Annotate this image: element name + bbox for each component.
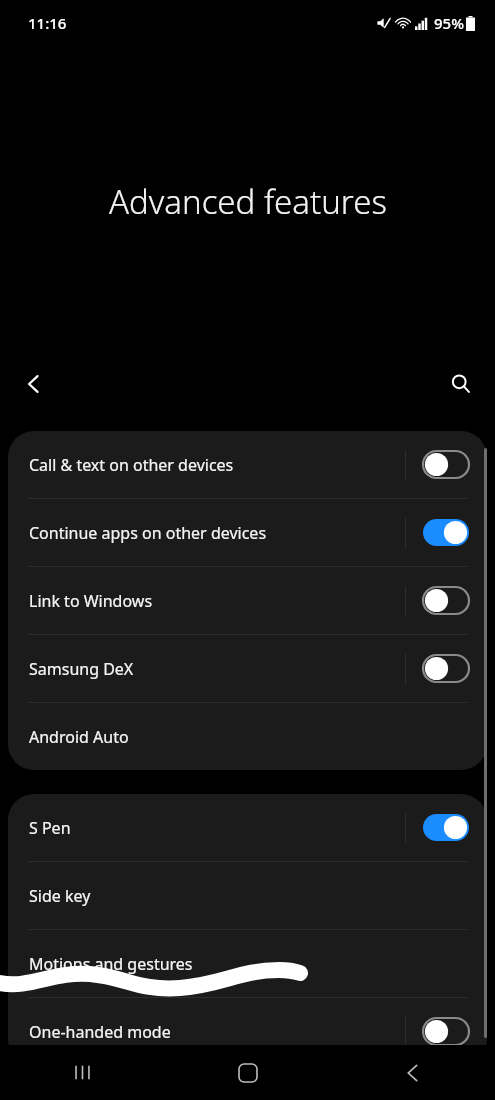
staticText: Android Auto (29, 726, 469, 748)
staticText: Samsung DeX (29, 658, 405, 680)
staticText: Link to Windows (29, 590, 405, 612)
button[interactable]: Home (165, 1045, 330, 1100)
staticText: S Pen (29, 817, 405, 839)
button[interactable]: One-handed mode switch (423, 1018, 469, 1045)
button[interactable]: S Pen switch (423, 814, 469, 841)
button[interactable]: Back (8, 358, 60, 410)
button[interactable]: One-handed mode (8, 998, 487, 1065)
button[interactable]: Recents (0, 1045, 165, 1100)
button[interactable]: S Pen (8, 794, 487, 861)
button[interactable]: Samsung DeX switch (423, 655, 469, 682)
button[interactable]: Search (435, 358, 487, 410)
button[interactable]: Android Auto (8, 703, 487, 770)
button[interactable]: Call & text on other devices switch (423, 451, 469, 478)
button[interactable]: Back (330, 1045, 495, 1100)
button[interactable]: Call & text on other devices (8, 431, 487, 498)
staticText: 95% (434, 13, 464, 33)
staticText: Motions and gestures (29, 953, 469, 975)
button[interactable]: Link to Windows (8, 567, 487, 634)
staticText: Advanced features (109, 179, 387, 224)
staticText: One-handed mode (29, 1021, 405, 1043)
button[interactable]: Continue apps on other devices switch (423, 519, 469, 546)
button[interactable]: Motions and gestures (8, 930, 487, 997)
staticText: Call & text on other devices (29, 454, 405, 476)
button[interactable]: Side key (8, 862, 487, 929)
staticText: Side key (29, 885, 469, 907)
button[interactable]: Continue apps on other devices (8, 499, 487, 566)
button[interactable]: Samsung DeX (8, 635, 487, 702)
staticText: 11:16 (28, 13, 67, 33)
staticText: Continue apps on other devices (29, 522, 405, 544)
button[interactable]: Link to Windows switch (423, 587, 469, 614)
